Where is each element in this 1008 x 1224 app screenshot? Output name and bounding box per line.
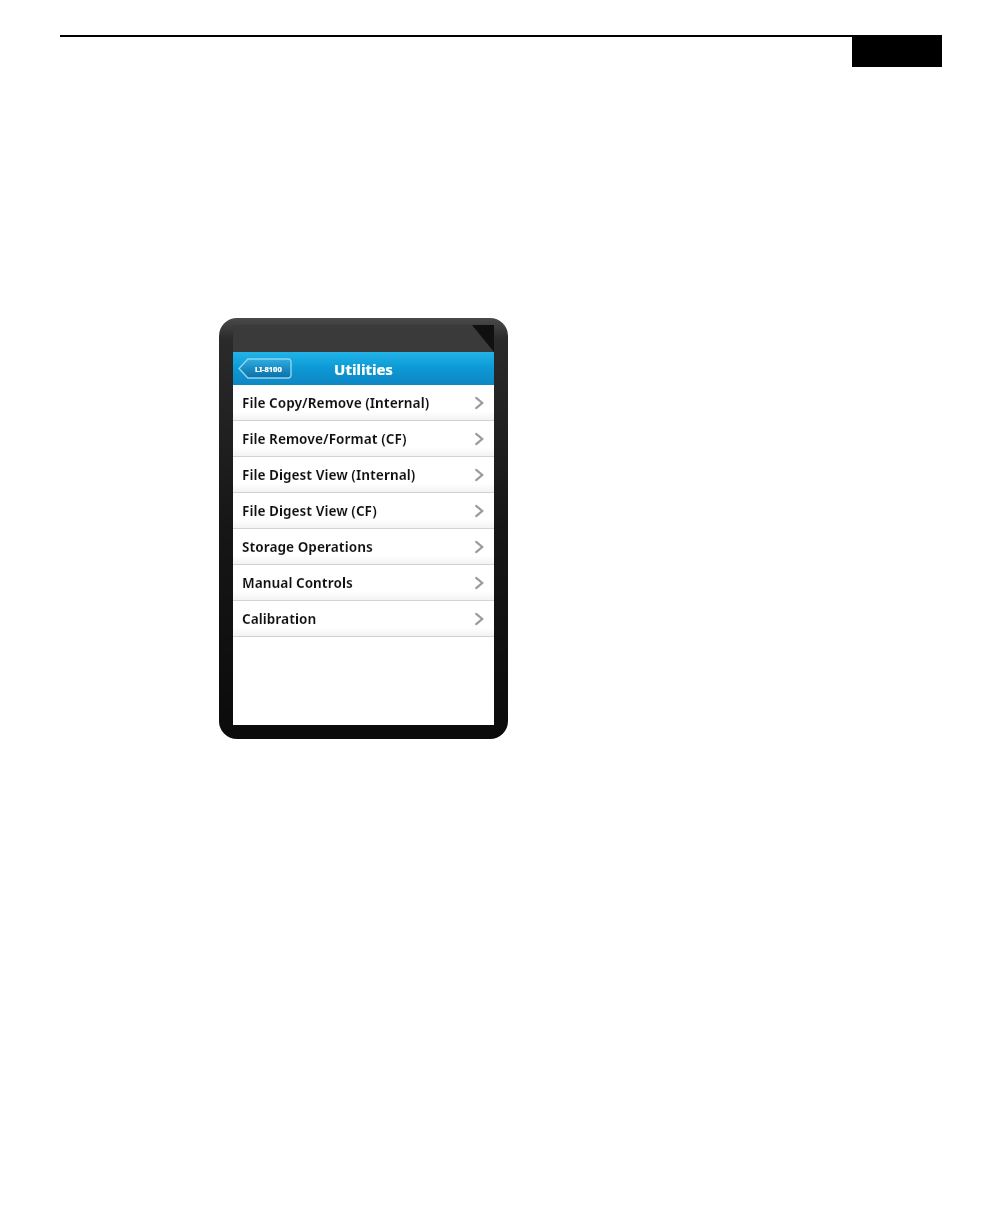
staticText: Storage Operations xyxy=(242,538,373,556)
staticText: Utilities xyxy=(334,359,393,379)
button[interactable]: File Digest View (CF) xyxy=(233,493,494,529)
button[interactable]: File Copy/Remove (Internal) xyxy=(233,385,494,421)
button[interactable]: Manual Controls xyxy=(233,565,494,601)
staticText: File Digest View (CF) xyxy=(242,502,377,520)
staticText: File Digest View (Internal) xyxy=(242,466,416,484)
button[interactable]: File Digest View (Internal) xyxy=(233,457,494,493)
button[interactable]: Storage Operations xyxy=(233,529,494,565)
staticText: Manual Controls xyxy=(242,574,353,592)
staticText: File Copy/Remove (Internal) xyxy=(242,394,430,412)
staticText: Calibration xyxy=(242,610,317,628)
button[interactable]: Back to LI-8100 xyxy=(239,359,291,378)
button[interactable]: Calibration xyxy=(233,601,494,637)
staticText: File Remove/Format (CF) xyxy=(242,430,407,448)
staticText: LI-8100 xyxy=(255,364,282,374)
button[interactable]: File Remove/Format (CF) xyxy=(233,421,494,457)
